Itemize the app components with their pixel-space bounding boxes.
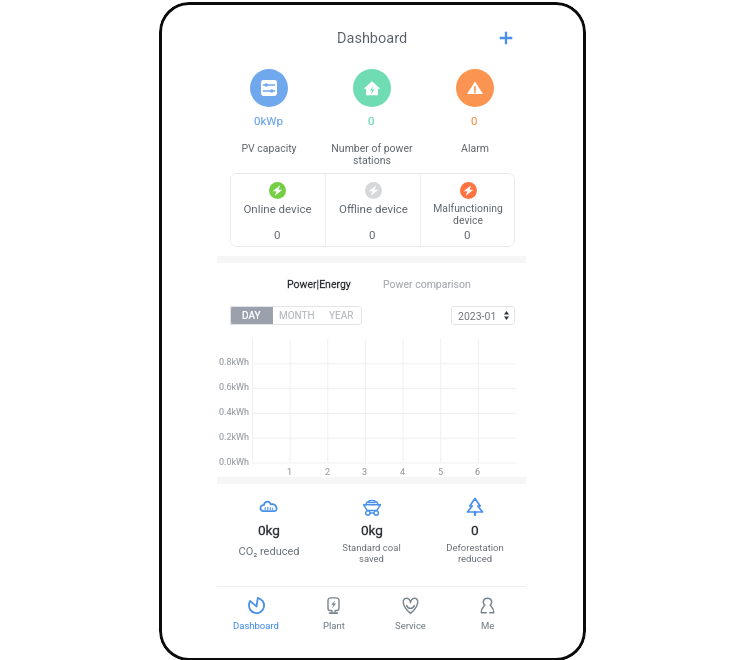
staticText: Power|Energy <box>287 278 351 290</box>
staticText: PV capacity <box>241 142 297 154</box>
staticText: 0.6kWh <box>219 382 249 393</box>
staticText: Standard coal saved <box>342 542 401 564</box>
staticText: Me <box>481 620 495 631</box>
staticText: 0kg <box>258 522 280 538</box>
button[interactable]: YEAR <box>320 306 362 325</box>
staticText: 0.0kWh <box>219 457 249 468</box>
staticText: 0kWp <box>254 114 283 127</box>
staticText: 0 <box>471 522 479 538</box>
staticText: 0 <box>274 228 281 241</box>
staticText: YEAR <box>329 310 354 322</box>
staticText: 1 <box>287 467 293 478</box>
button[interactable]: 0kWp <box>217 69 320 154</box>
button[interactable]: DAY <box>230 306 273 325</box>
button[interactable]: Power|Energy <box>283 275 355 293</box>
staticText: 3 <box>362 467 368 478</box>
staticText: 2 <box>325 467 331 478</box>
staticText: 0 <box>464 228 471 241</box>
button[interactable]: Plant <box>295 587 372 635</box>
staticText: 0kg <box>361 522 383 538</box>
staticText: 0.4kWh <box>219 407 249 418</box>
button[interactable]: Malfunctioning device <box>421 173 515 247</box>
button[interactable]: Power comparison <box>379 275 475 293</box>
button[interactable]: 0kg <box>217 496 320 558</box>
staticText: Malfunctioning device <box>433 202 503 226</box>
button[interactable]: Offline device <box>326 173 420 247</box>
staticText: Dashboard <box>233 620 279 631</box>
button[interactable]: Online device <box>230 173 325 247</box>
button[interactable]: MONTH <box>273 306 320 325</box>
button[interactable]: Me <box>449 587 526 635</box>
staticText: Online device <box>243 202 312 215</box>
button[interactable]: Service <box>372 587 449 635</box>
button[interactable]: 0 <box>320 69 423 166</box>
staticText: Alarm <box>461 142 489 154</box>
staticText: Deforestation reduced <box>446 542 504 564</box>
staticText: DAY <box>242 310 261 322</box>
button[interactable]: 0 <box>423 69 526 154</box>
staticText: 0.2kWh <box>219 432 249 443</box>
staticText: 4 <box>400 467 406 478</box>
staticText: 0 <box>471 114 478 127</box>
button[interactable]: Add <box>493 25 519 51</box>
button[interactable]: 2023-01 <box>451 306 515 325</box>
staticText: Offline device <box>339 202 408 215</box>
staticText: Dashboard <box>337 30 408 47</box>
staticText: Plant <box>323 620 345 631</box>
staticText: Power comparison <box>383 278 471 290</box>
staticText: 0 <box>368 114 375 127</box>
staticText: 2023-01 <box>458 310 497 322</box>
staticText: Number of power stations <box>331 142 413 166</box>
button[interactable]: 0kg <box>320 496 423 564</box>
staticText: 0.8kWh <box>219 357 249 368</box>
staticText: Service <box>395 620 426 631</box>
button[interactable]: 0 <box>423 496 526 564</box>
staticText: 0 <box>369 228 376 241</box>
staticText: MONTH <box>279 310 315 322</box>
staticText: 5 <box>438 467 444 478</box>
staticText: 6 <box>475 467 481 478</box>
staticText: CO₂ reduced <box>238 545 300 558</box>
button[interactable]: Dashboard <box>217 587 295 635</box>
